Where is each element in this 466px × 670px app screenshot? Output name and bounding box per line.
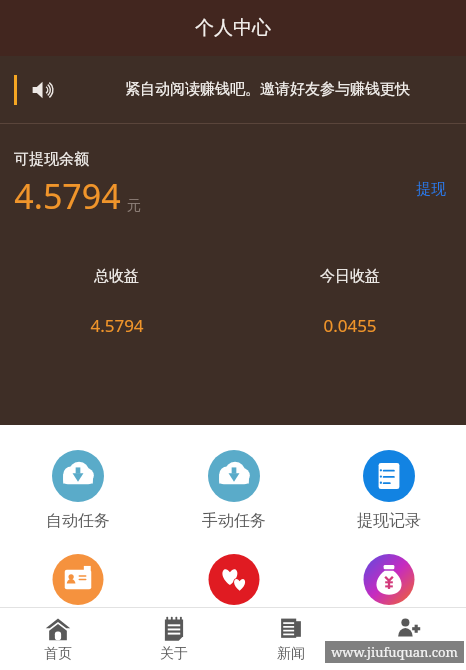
staticText: 总收益 [94,267,139,286]
staticText: www.jiufuquan.com [331,643,458,661]
staticText: 手动任务 [202,511,266,531]
staticText: 元 [127,197,141,215]
staticText: 4.5794 [90,314,144,337]
staticText: 紧自动阅读赚钱吧。邀请好友参与赚钱更快 [125,80,410,99]
staticText: 首页 [44,645,72,663]
button[interactable]: 今日收益 [233,267,466,337]
other: Notice [29,77,55,103]
staticText: 可提现余额 [14,150,89,169]
staticText: 4.5794 [14,173,121,219]
button[interactable]: 首页 [0,608,116,670]
staticText: 提现记录 [357,511,421,531]
staticText: 自动任务 [46,511,110,531]
button[interactable]: 会员 [349,608,466,670]
button[interactable]: 总收益 [0,267,233,337]
staticText: 个人中心 [195,16,271,40]
button[interactable]: 用户信息 [0,552,156,607]
button[interactable]: 新手教学 [156,552,311,607]
staticText: 关于 [160,645,188,663]
staticText: 会员 [394,645,422,663]
button[interactable]: 新闻 [232,608,349,670]
staticText: 新闻 [277,645,305,663]
staticText: 今日收益 [320,267,380,286]
button[interactable]: 提现记录 [311,448,466,533]
button[interactable]: 关于 [116,608,232,670]
button[interactable]: Notice [0,56,466,123]
button[interactable]: 提现 [412,177,450,202]
button[interactable]: 我的下线 [311,552,466,607]
button[interactable]: 自动任务 [0,448,156,533]
staticText: 0.0455 [323,314,377,337]
staticText: 提现 [416,180,446,199]
button[interactable]: 手动任务 [156,448,311,533]
